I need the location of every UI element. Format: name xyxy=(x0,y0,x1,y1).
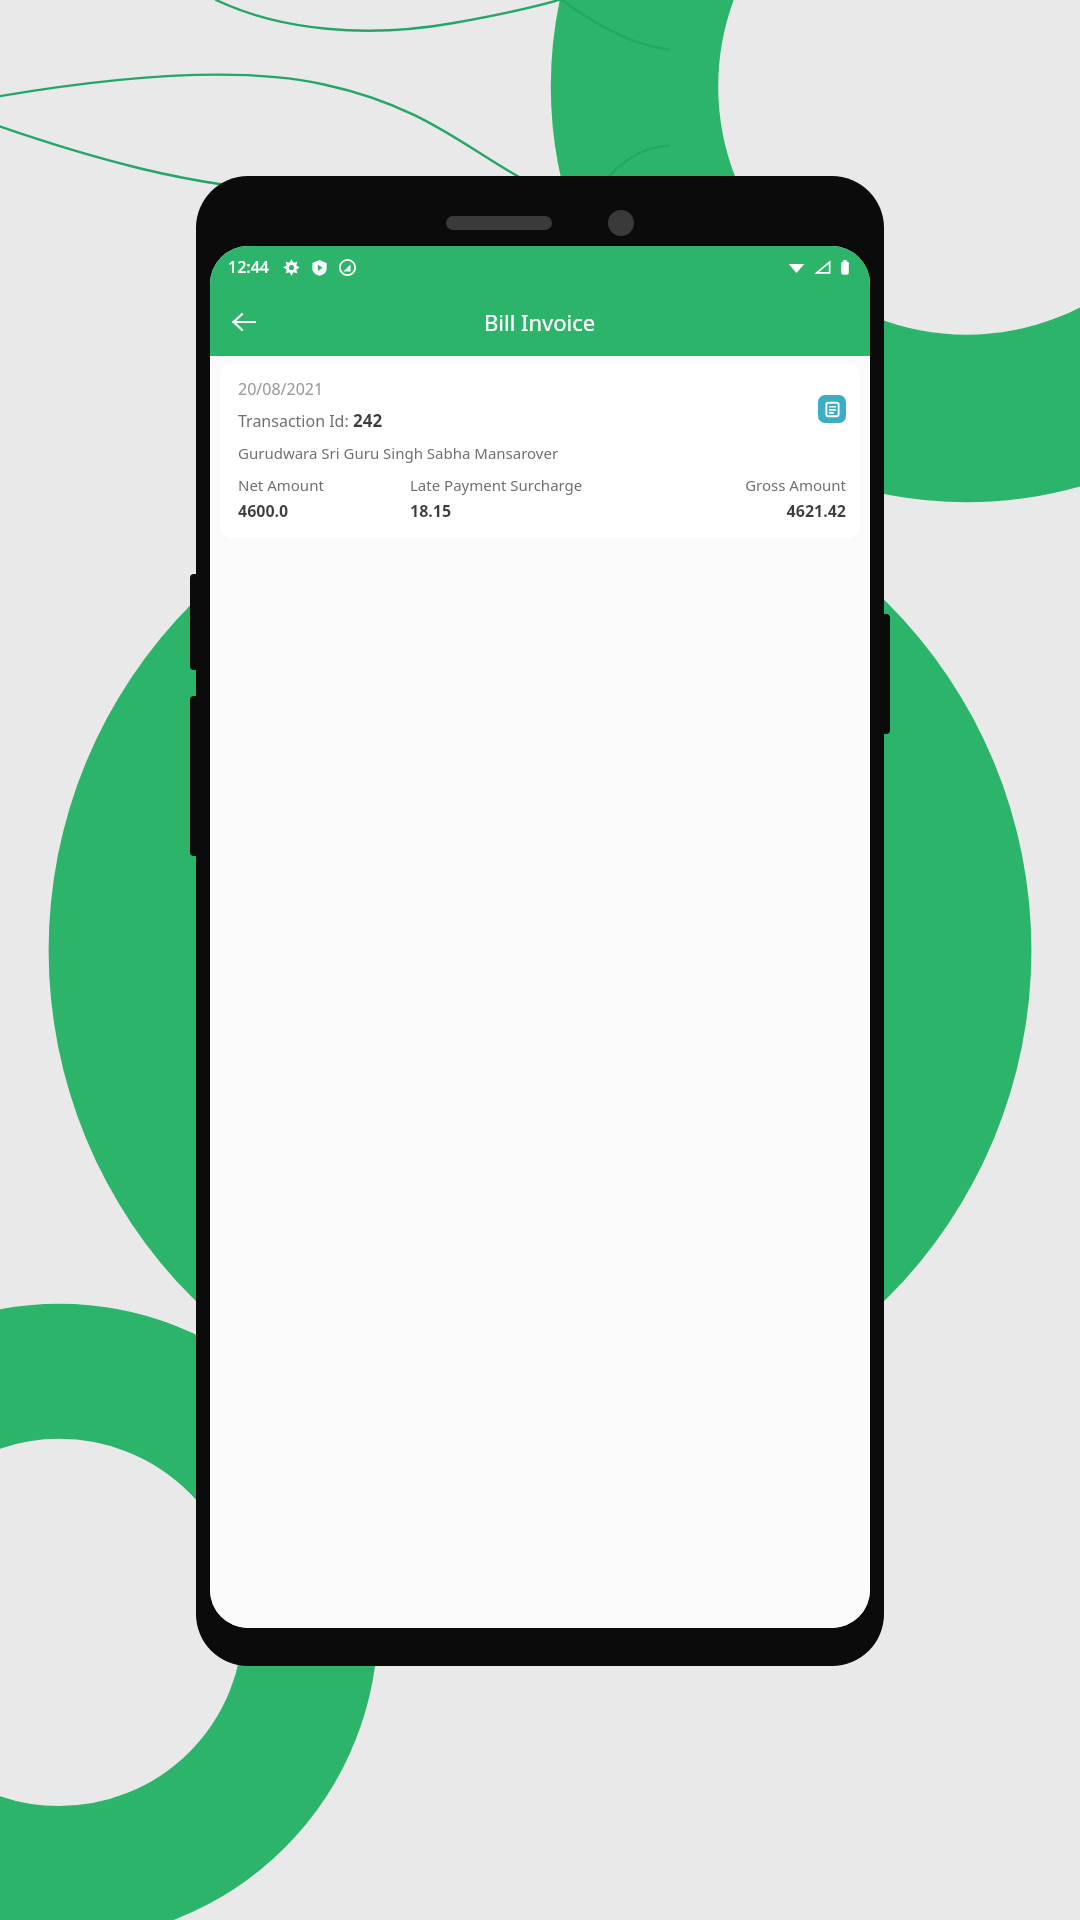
staticText: 4621.42 xyxy=(673,500,846,522)
staticText: 18.15 xyxy=(410,500,673,522)
button[interactable]: 20/08/2021 xyxy=(220,364,860,538)
staticText: 20/08/2021 xyxy=(238,378,324,400)
staticText: Gross Amount xyxy=(673,475,846,495)
staticText: Transaction Id: xyxy=(238,410,353,432)
staticText: 12:44 xyxy=(228,256,269,278)
staticText: 4600.0 xyxy=(238,500,410,522)
staticText: Late Payment Surcharge xyxy=(410,475,673,495)
staticText: Bill Invoice xyxy=(484,307,596,337)
staticText: Net Amount xyxy=(238,475,410,495)
button[interactable]: View receipt xyxy=(818,395,846,423)
button[interactable]: Back xyxy=(218,296,270,348)
staticText: 242 xyxy=(353,409,383,432)
staticText: Gurudwara Sri Guru Singh Sabha Mansarove… xyxy=(238,443,559,463)
